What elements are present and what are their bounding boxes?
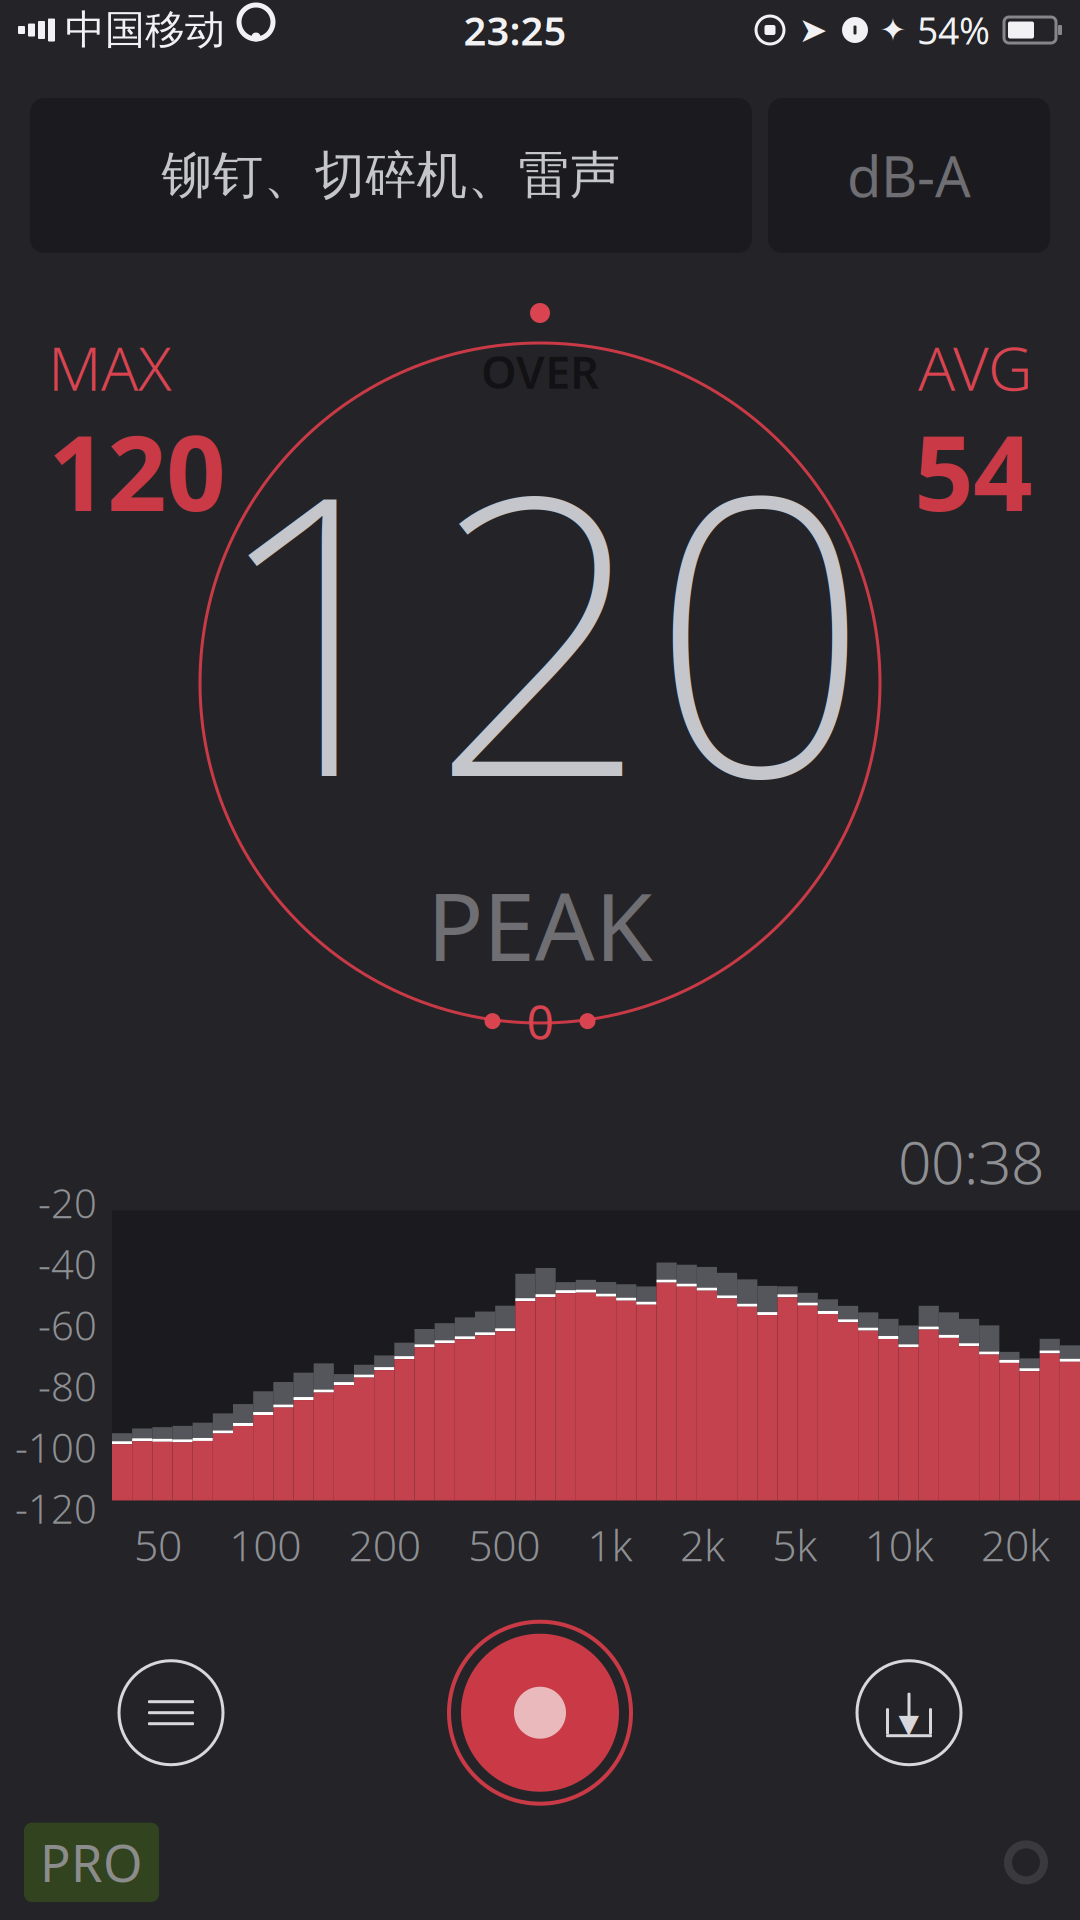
staticText: ➤: [798, 10, 827, 50]
staticText: 10k: [865, 1516, 934, 1573]
button[interactable]: Export: [834, 1638, 984, 1788]
staticText: 2k: [680, 1516, 725, 1573]
staticText: 200: [349, 1516, 421, 1573]
staticText: -40: [38, 1237, 97, 1290]
staticText: 中国移动: [65, 5, 225, 54]
staticText: PRO: [40, 1829, 143, 1896]
staticText: 0: [526, 989, 553, 1053]
staticText: -100: [15, 1421, 97, 1474]
staticText: -60: [38, 1298, 97, 1351]
staticText: 120: [210, 369, 870, 883]
button[interactable]: PRO: [24, 1823, 159, 1902]
staticText: 54: [914, 402, 1032, 540]
button[interactable]: 铆钉、切碎机、雷声: [30, 98, 752, 253]
staticText: OVER: [481, 341, 599, 401]
staticText: ▼: [898, 1709, 919, 1739]
staticText: 铆钉、切碎机、雷声: [161, 144, 620, 207]
button[interactable]: dB-A: [768, 98, 1050, 253]
staticText: -20: [38, 1176, 97, 1229]
staticText: AVG: [918, 326, 1032, 408]
staticText: 120: [48, 402, 225, 540]
staticText: 500: [468, 1516, 540, 1573]
button[interactable]: Record: [440, 1613, 640, 1813]
staticText: dB-A: [847, 138, 971, 213]
button[interactable]: Settings: [996, 1832, 1056, 1892]
staticText: 23:25: [463, 3, 566, 56]
button[interactable]: Menu: [96, 1638, 246, 1788]
staticText: MAX: [48, 326, 172, 408]
staticText: 54%: [917, 5, 990, 55]
staticText: 100: [229, 1516, 301, 1573]
staticText: 20k: [981, 1516, 1050, 1573]
staticText: -120: [15, 1482, 97, 1535]
staticText: 5k: [772, 1516, 817, 1573]
staticText: 50: [134, 1516, 182, 1573]
staticText: PEAK: [427, 863, 653, 987]
staticText: ✦: [879, 12, 906, 48]
staticText: 1k: [587, 1516, 632, 1573]
staticText: -80: [38, 1359, 97, 1413]
staticText: 00:38: [898, 1123, 1044, 1200]
